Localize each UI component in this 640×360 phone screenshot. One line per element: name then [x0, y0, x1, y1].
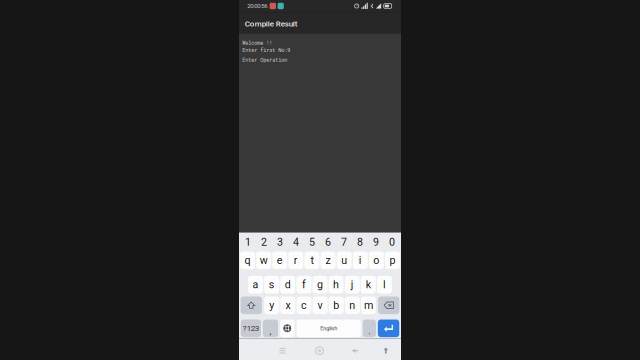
staticText: k: [366, 278, 371, 291]
button[interactable]: q: [240, 251, 255, 269]
button[interactable]: m: [361, 296, 376, 314]
staticText: 9: [373, 236, 379, 248]
staticText: i: [359, 254, 362, 266]
button[interactable]: x: [280, 296, 295, 314]
button[interactable]: Period: [363, 319, 376, 337]
button[interactable]: Switch language: [280, 319, 295, 337]
button[interactable]: 8: [353, 236, 367, 248]
button[interactable]: z: [321, 251, 336, 269]
staticText: Enter Operation: [242, 56, 287, 63]
staticText: m: [364, 299, 373, 311]
button[interactable]: n: [345, 296, 360, 314]
button[interactable]: r: [288, 251, 303, 269]
staticText: 1: [245, 236, 251, 248]
staticText: ?123: [243, 324, 259, 333]
staticText: 2: [261, 236, 267, 248]
staticText: g: [317, 278, 323, 291]
button[interactable]: d: [280, 276, 295, 293]
button[interactable]: 1: [241, 236, 255, 248]
staticText: 6: [325, 236, 331, 248]
button[interactable]: 5: [305, 236, 319, 248]
staticText: .: [368, 326, 370, 336]
staticText: English: [320, 325, 337, 332]
button[interactable]: 0: [385, 236, 399, 248]
button[interactable]: 3: [273, 236, 287, 248]
button[interactable]: a: [248, 276, 263, 293]
staticText: 4: [293, 236, 299, 248]
staticText: z: [326, 254, 331, 266]
staticText: Compile Result: [245, 19, 298, 28]
button[interactable]: o: [369, 251, 384, 269]
button[interactable]: b: [329, 296, 344, 314]
staticText: o: [373, 254, 379, 266]
button[interactable]: Comma: [263, 319, 278, 337]
button[interactable]: l: [377, 276, 392, 293]
button[interactable]: Back: [346, 337, 364, 360]
button[interactable]: f: [296, 276, 311, 293]
button[interactable]: y: [264, 296, 279, 314]
staticText: h: [333, 278, 339, 291]
staticText: v: [318, 299, 323, 311]
button[interactable]: k: [361, 276, 376, 293]
staticText: Enter first No:9: [242, 46, 290, 53]
staticText: t: [310, 254, 313, 266]
staticText: a: [253, 278, 259, 291]
staticText: p: [389, 254, 395, 266]
staticText: 0: [389, 236, 395, 248]
staticText: b: [333, 299, 339, 311]
button[interactable]: h: [329, 276, 344, 293]
button[interactable]: 6: [321, 236, 335, 248]
staticText: Welcome !!: [242, 39, 272, 46]
button[interactable]: 4: [289, 236, 303, 248]
staticText: r: [294, 254, 298, 266]
staticText: s: [269, 278, 275, 291]
button[interactable]: 9: [369, 236, 383, 248]
staticText: 20:00:56: [247, 2, 267, 9]
button[interactable]: w: [256, 251, 271, 269]
button[interactable]: Backspace: [378, 296, 399, 314]
button[interactable]: Home: [310, 337, 328, 360]
button[interactable]: j: [345, 276, 360, 293]
staticText: e: [277, 254, 283, 266]
button[interactable]: ?123: [241, 319, 261, 337]
button[interactable]: 2: [257, 236, 271, 248]
button[interactable]: v: [313, 296, 328, 314]
staticText: 3: [277, 236, 283, 248]
staticText: x: [285, 299, 290, 311]
staticText: y: [269, 299, 274, 311]
staticText: j: [351, 278, 354, 291]
button[interactable]: i: [353, 251, 368, 269]
button[interactable]: s: [264, 276, 279, 293]
staticText: q: [245, 254, 251, 266]
staticText: c: [301, 299, 307, 311]
button[interactable]: Hide keyboard: [379, 337, 393, 360]
button[interactable]: c: [296, 296, 311, 314]
button[interactable]: e: [272, 251, 287, 269]
staticText: u: [341, 254, 347, 266]
staticText: ,: [269, 326, 271, 336]
button[interactable]: 7: [337, 236, 351, 248]
button[interactable]: Recent apps: [273, 337, 291, 360]
button[interactable]: g: [312, 276, 327, 293]
button[interactable]: p: [385, 251, 400, 269]
button[interactable]: Enter: [378, 319, 399, 337]
staticText: 8: [357, 236, 363, 248]
staticText: 7: [341, 236, 347, 248]
staticText: l: [383, 278, 386, 291]
button[interactable]: t: [304, 251, 319, 269]
staticText: f: [302, 278, 306, 291]
staticText: 5: [309, 236, 315, 248]
button[interactable]: Space: [297, 319, 361, 337]
button[interactable]: u: [337, 251, 352, 269]
staticText: d: [285, 278, 291, 291]
staticText: n: [349, 299, 355, 311]
staticText: w: [260, 254, 268, 266]
button[interactable]: Shift: [241, 296, 262, 314]
